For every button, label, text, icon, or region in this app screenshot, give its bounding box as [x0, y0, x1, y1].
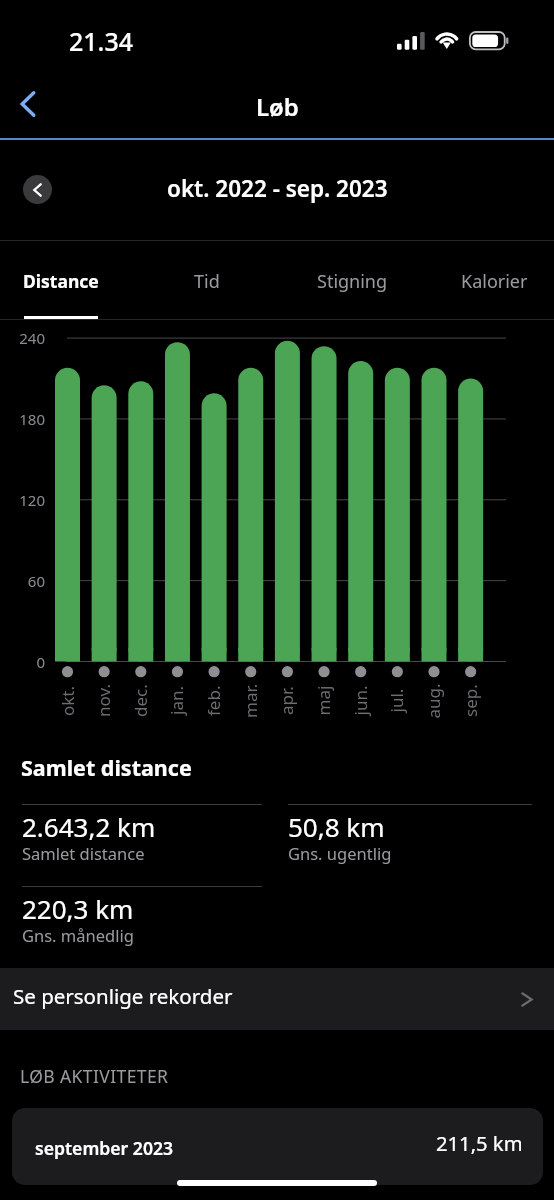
button[interactable]: Forrige periode: [23, 175, 52, 204]
staticText: okt. 2022 - sep. 2023: [167, 173, 388, 204]
staticText: september 2023: [35, 1136, 174, 1160]
staticText: nov.: [92, 684, 115, 717]
staticText: Distance: [23, 269, 99, 293]
staticText: jul.: [384, 688, 407, 712]
staticText: Samlet distance: [21, 753, 192, 782]
staticText: Løb: [256, 90, 299, 123]
staticText: Samlet distance: [22, 842, 145, 864]
staticText: aug.: [421, 682, 444, 718]
staticText: sep.: [459, 684, 482, 717]
staticText: jun.: [348, 685, 371, 715]
staticText: Gns. månedlig: [22, 924, 134, 946]
staticText: 211,5 km: [436, 1129, 523, 1157]
staticText: dec.: [129, 684, 152, 717]
staticText: jan.: [165, 686, 188, 715]
button[interactable]: september 2023: [12, 1108, 543, 1185]
staticText: 120: [19, 490, 45, 510]
staticText: LØB AKTIVITETER: [20, 1064, 169, 1088]
button[interactable]: Tilbage: [0, 78, 56, 130]
staticText: 50,8 km: [288, 809, 385, 844]
staticText: 21.34: [69, 24, 134, 58]
button[interactable]: Se personlige rekorder: [0, 968, 554, 1030]
staticText: feb.: [202, 685, 225, 716]
button[interactable]: 50,8 km: [288, 804, 532, 880]
staticText: 60: [27, 571, 45, 591]
staticText: maj: [311, 685, 334, 715]
button[interactable]: Kalorier: [437, 241, 551, 319]
staticText: Gns. ugentlig: [288, 842, 392, 864]
button[interactable]: Stigning: [295, 241, 409, 319]
staticText: 220,3 km: [22, 891, 134, 926]
staticText: Tid: [194, 269, 220, 294]
button[interactable]: 2.643,2 km: [22, 804, 262, 880]
staticText: Se personlige rekorder: [13, 982, 233, 1010]
staticText: apr.: [275, 686, 298, 715]
staticText: mar.: [239, 683, 262, 718]
staticText: okt.: [56, 685, 79, 716]
staticText: Kalorier: [461, 269, 528, 294]
staticText: 240: [19, 328, 45, 348]
button[interactable]: Tid: [150, 241, 264, 319]
staticText: Stigning: [317, 269, 388, 294]
staticText: 0: [36, 652, 45, 672]
staticText: 180: [19, 409, 45, 429]
staticText: 2.643,2 km: [22, 809, 156, 844]
button[interactable]: Distance: [4, 241, 118, 319]
button[interactable]: 220,3 km: [22, 886, 262, 962]
